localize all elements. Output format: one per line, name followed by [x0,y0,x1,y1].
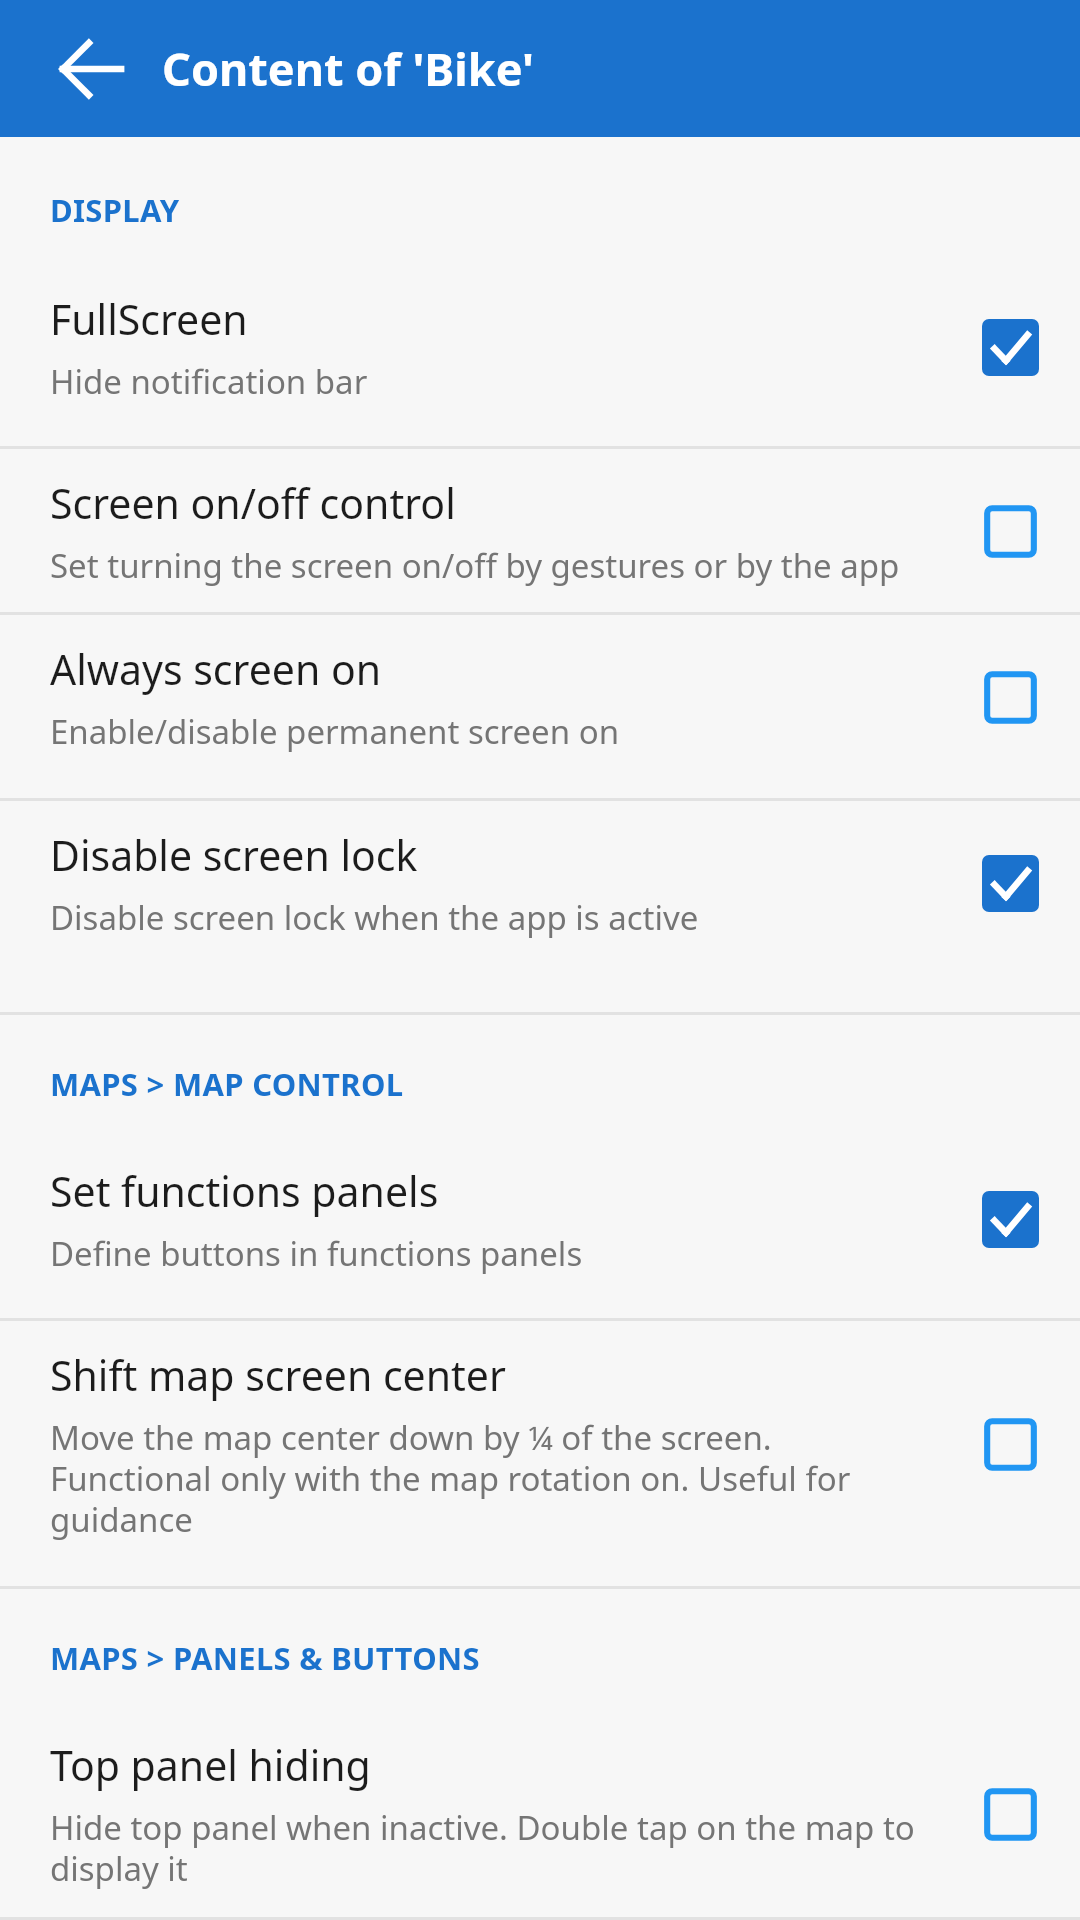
button[interactable]: Always screen on, unchecked [982,669,1039,726]
button[interactable]: Disable screen lock [0,801,1080,1012]
staticText: Disable screen lock [50,827,418,883]
staticText: Set turning the screen on/off by gesture… [50,543,930,588]
staticText: MAPS > MAP CONTROL [50,1063,404,1105]
button[interactable]: Screen on/off control, unchecked [982,503,1039,560]
staticText: Define buttons in functions panels [50,1231,583,1276]
staticText: Top panel hiding [50,1737,371,1793]
button[interactable]: Screen on/off control [0,449,1080,612]
staticText: Always screen on [50,641,382,697]
button[interactable]: Set functions panels [0,1163,1080,1318]
staticText: Set functions panels [50,1163,439,1219]
button[interactable]: Set functions panels, checked [982,1191,1039,1248]
button[interactable]: Disable screen lock, checked [982,855,1039,912]
staticText: Shift map screen center [50,1347,506,1403]
staticText: Content of 'Bike' [162,38,535,99]
staticText: Enable/disable permanent screen on [50,709,620,754]
button[interactable]: Always screen on [0,615,1080,798]
staticText: FullScreen [50,291,248,347]
staticText: Hide notification bar [50,359,368,404]
button[interactable]: Shift map screen center, unchecked [982,1416,1039,1473]
staticText: Screen on/off control [50,475,456,531]
button[interactable]: Top panel hiding [0,1737,1080,1917]
button[interactable]: Shift map screen center [0,1321,1080,1586]
staticText: Hide top panel when inactive. Double tap… [50,1805,930,1891]
button[interactable]: Top panel hiding, unchecked [982,1786,1039,1843]
button[interactable]: FullScreen, checked [982,319,1039,376]
button[interactable]: Back [40,17,144,121]
staticText: Disable screen lock when the app is acti… [50,895,699,940]
staticText: Move the map center down by ¼ of the scr… [50,1415,930,1542]
staticText: MAPS > PANELS & BUTTONS [50,1637,480,1679]
staticText: DISPLAY [50,189,180,231]
button[interactable]: FullScreen [0,291,1080,446]
